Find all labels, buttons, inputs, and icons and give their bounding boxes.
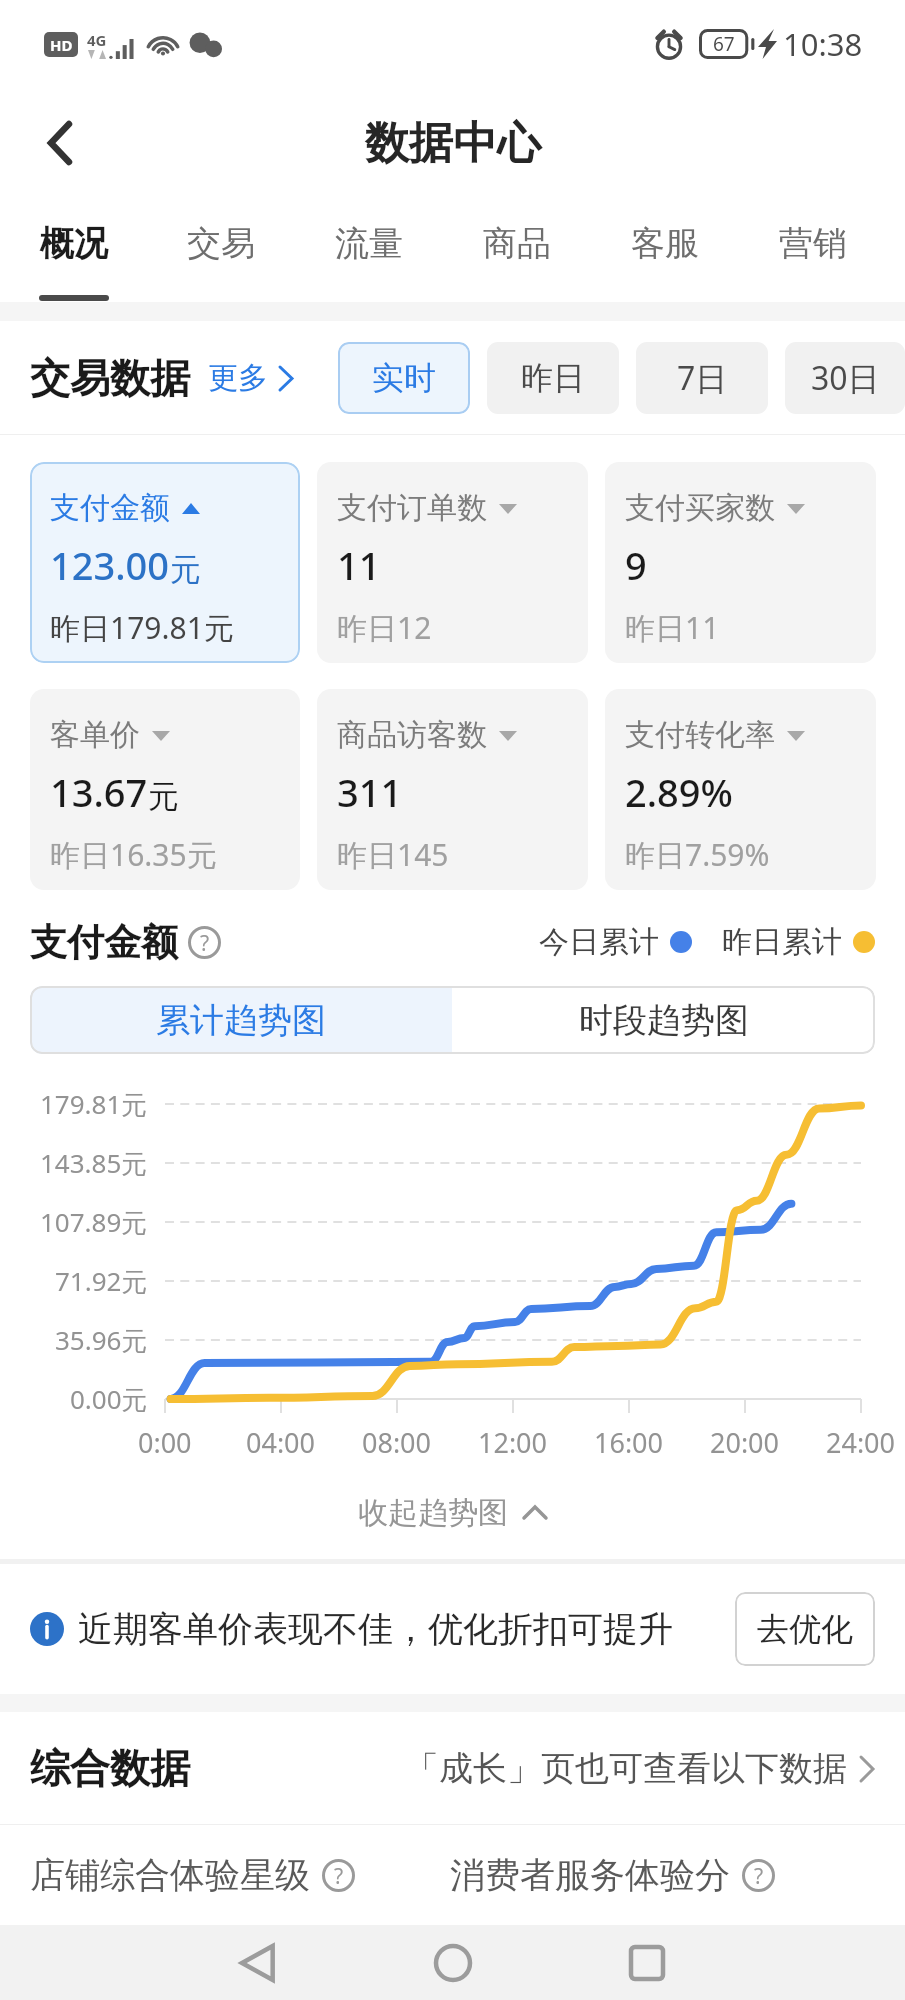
staticText: ? <box>200 928 210 957</box>
staticText: 店铺综合体验星级 <box>30 1853 310 1897</box>
button[interactable]: 概况 <box>0 198 147 302</box>
button[interactable]: Back <box>0 88 120 198</box>
staticText: 元 <box>170 550 201 589</box>
staticText: 11 <box>337 539 381 591</box>
staticText: 综合数据 <box>30 1743 190 1793</box>
staticText: 30日 <box>811 356 880 400</box>
staticText: HD <box>50 35 73 55</box>
staticText: 近期客单价表现不佳，优化折扣可提升 <box>78 1607 673 1651</box>
button[interactable]: Back <box>210 1925 308 2000</box>
staticText: 交易 <box>187 222 255 265</box>
staticText: 71.92元 <box>55 1263 148 1299</box>
button[interactable]: 商品访客数 <box>317 689 588 890</box>
staticText: 123.00 <box>50 539 170 591</box>
staticText: 0:00 <box>138 1424 192 1461</box>
staticText: 2.89% <box>625 766 733 818</box>
staticText: 数据中心 <box>365 116 541 171</box>
staticText: ? <box>754 1861 764 1890</box>
staticText: 0.00元 <box>70 1381 148 1417</box>
staticText: 7日 <box>677 356 728 400</box>
staticText: 客单价 <box>50 716 140 754</box>
button[interactable]: 「成长」页也可查看以下数据 <box>405 1747 875 1790</box>
staticText: 交易数据 <box>30 353 190 403</box>
button[interactable]: 累计趋势图 <box>30 986 452 1054</box>
staticText: 昨日累计 <box>722 923 842 961</box>
button[interactable]: 交易 <box>147 198 295 302</box>
button[interactable]: 实时 <box>338 342 470 414</box>
button[interactable]: 去优化 <box>735 1592 875 1666</box>
staticText: 支付金额 <box>50 489 170 527</box>
staticText: 9 <box>625 539 647 591</box>
staticText: 16:00 <box>594 1424 664 1461</box>
button[interactable]: 流量 <box>295 198 443 302</box>
staticText: 支付金额 <box>30 919 178 966</box>
staticText: 支付转化率 <box>625 716 775 754</box>
staticText: 消费者服务体验分 <box>450 1853 730 1897</box>
button[interactable]: 营销 <box>739 198 887 302</box>
button[interactable]: 昨日 <box>487 342 619 414</box>
staticText: 昨日7.59% <box>625 834 770 875</box>
staticText: 昨日12 <box>337 607 432 648</box>
staticText: 昨日 <box>521 358 585 398</box>
button[interactable]: 支付订单数 <box>317 462 588 663</box>
button[interactable]: 30日 <box>785 342 905 414</box>
staticText: 4G <box>87 30 107 50</box>
staticText: 商品 <box>483 222 551 265</box>
staticText: 营销 <box>779 222 847 265</box>
staticText: 实时 <box>372 358 436 398</box>
staticText: 67 <box>713 31 735 57</box>
staticText: 概况 <box>40 222 108 265</box>
staticText: 去优化 <box>757 1609 853 1649</box>
staticText: 107.89元 <box>40 1204 148 1240</box>
staticText: 流量 <box>335 222 403 265</box>
button[interactable]: 时段趋势图 <box>452 986 875 1054</box>
staticText: 更多 <box>208 359 268 397</box>
button[interactable]: 商品 <box>443 198 591 302</box>
button[interactable]: 支付转化率 <box>605 689 876 890</box>
staticText: ? <box>334 1861 344 1890</box>
staticText: 20:00 <box>710 1424 780 1461</box>
button[interactable]: 支付金额 <box>30 462 300 663</box>
staticText: 昨日179.81元 <box>50 607 234 648</box>
staticText: 昨日145 <box>337 834 449 875</box>
staticText: 12:00 <box>478 1424 548 1461</box>
staticText: 179.81元 <box>40 1086 148 1122</box>
button[interactable]: 客服 <box>591 198 739 302</box>
staticText: 昨日16.35元 <box>50 834 217 875</box>
staticText: 收起趋势图 <box>358 1494 508 1532</box>
staticText: 143.85元 <box>40 1145 148 1181</box>
staticText: 时段趋势图 <box>579 999 749 1042</box>
staticText: 元 <box>148 777 179 816</box>
staticText: 24:00 <box>826 1424 896 1461</box>
button[interactable]: 7日 <box>636 342 768 414</box>
staticText: 支付订单数 <box>337 489 487 527</box>
staticText: 08:00 <box>362 1424 432 1461</box>
staticText: 累计趋势图 <box>156 999 326 1042</box>
staticText: 04:00 <box>246 1424 316 1461</box>
staticText: 今日累计 <box>539 923 659 961</box>
button[interactable]: Home <box>404 1925 502 2000</box>
staticText: 商品访客数 <box>337 716 487 754</box>
button[interactable]: 支付买家数 <box>605 462 876 663</box>
staticText: 10:38 <box>783 23 863 65</box>
staticText: 35.96元 <box>55 1322 148 1358</box>
button[interactable]: Recents <box>598 1925 696 2000</box>
button[interactable]: 收起趋势图 <box>0 1466 905 1559</box>
staticText: 客服 <box>631 222 699 265</box>
button[interactable]: 更多 <box>208 359 294 397</box>
staticText: 13.67 <box>50 766 148 818</box>
staticText: 支付买家数 <box>625 489 775 527</box>
staticText: 昨日11 <box>625 607 720 648</box>
button[interactable]: 客单价 <box>30 689 300 890</box>
staticText: 311 <box>337 766 403 818</box>
staticText: 「成长」页也可查看以下数据 <box>405 1747 847 1790</box>
